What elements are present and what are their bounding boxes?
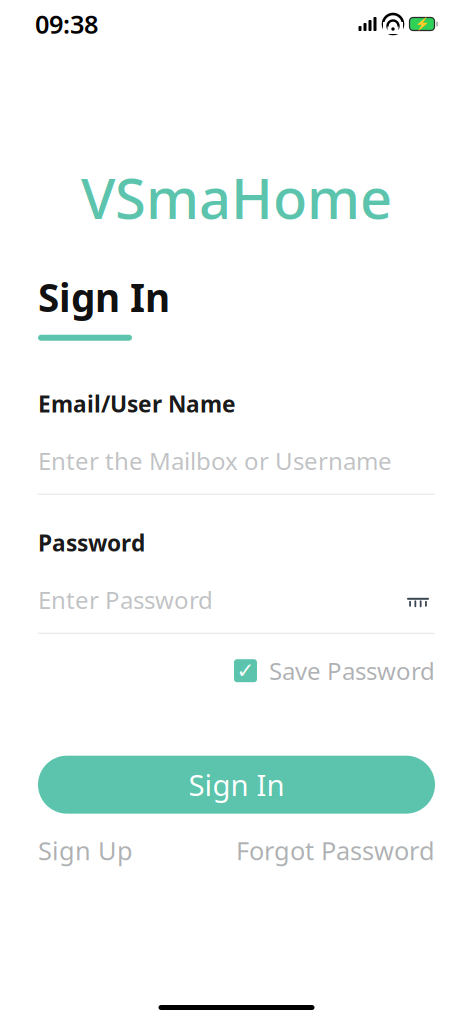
button[interactable]: Show password <box>401 584 435 616</box>
staticText: Sign In <box>38 271 170 323</box>
staticText: Email/User Name <box>38 389 236 419</box>
staticText: 09:38 <box>35 7 98 41</box>
staticText: Sign Up <box>38 834 133 867</box>
staticText: Enter the Mailbox or Username <box>38 445 392 477</box>
button[interactable]: Sign In <box>38 756 435 814</box>
button[interactable]: Sign Up <box>38 834 133 867</box>
staticText: Forgot Password <box>236 834 435 867</box>
staticText: ✓ <box>236 659 254 683</box>
staticText: ⚡ <box>414 17 429 31</box>
button[interactable]: ✓ <box>234 655 435 687</box>
button[interactable]: Forgot Password <box>236 834 435 867</box>
staticText: Save Password <box>269 655 435 687</box>
staticText: Password <box>38 528 145 558</box>
staticText: Enter Password <box>38 584 213 616</box>
staticText: Sign In <box>188 765 284 804</box>
staticText: VSmaHome <box>81 160 392 234</box>
